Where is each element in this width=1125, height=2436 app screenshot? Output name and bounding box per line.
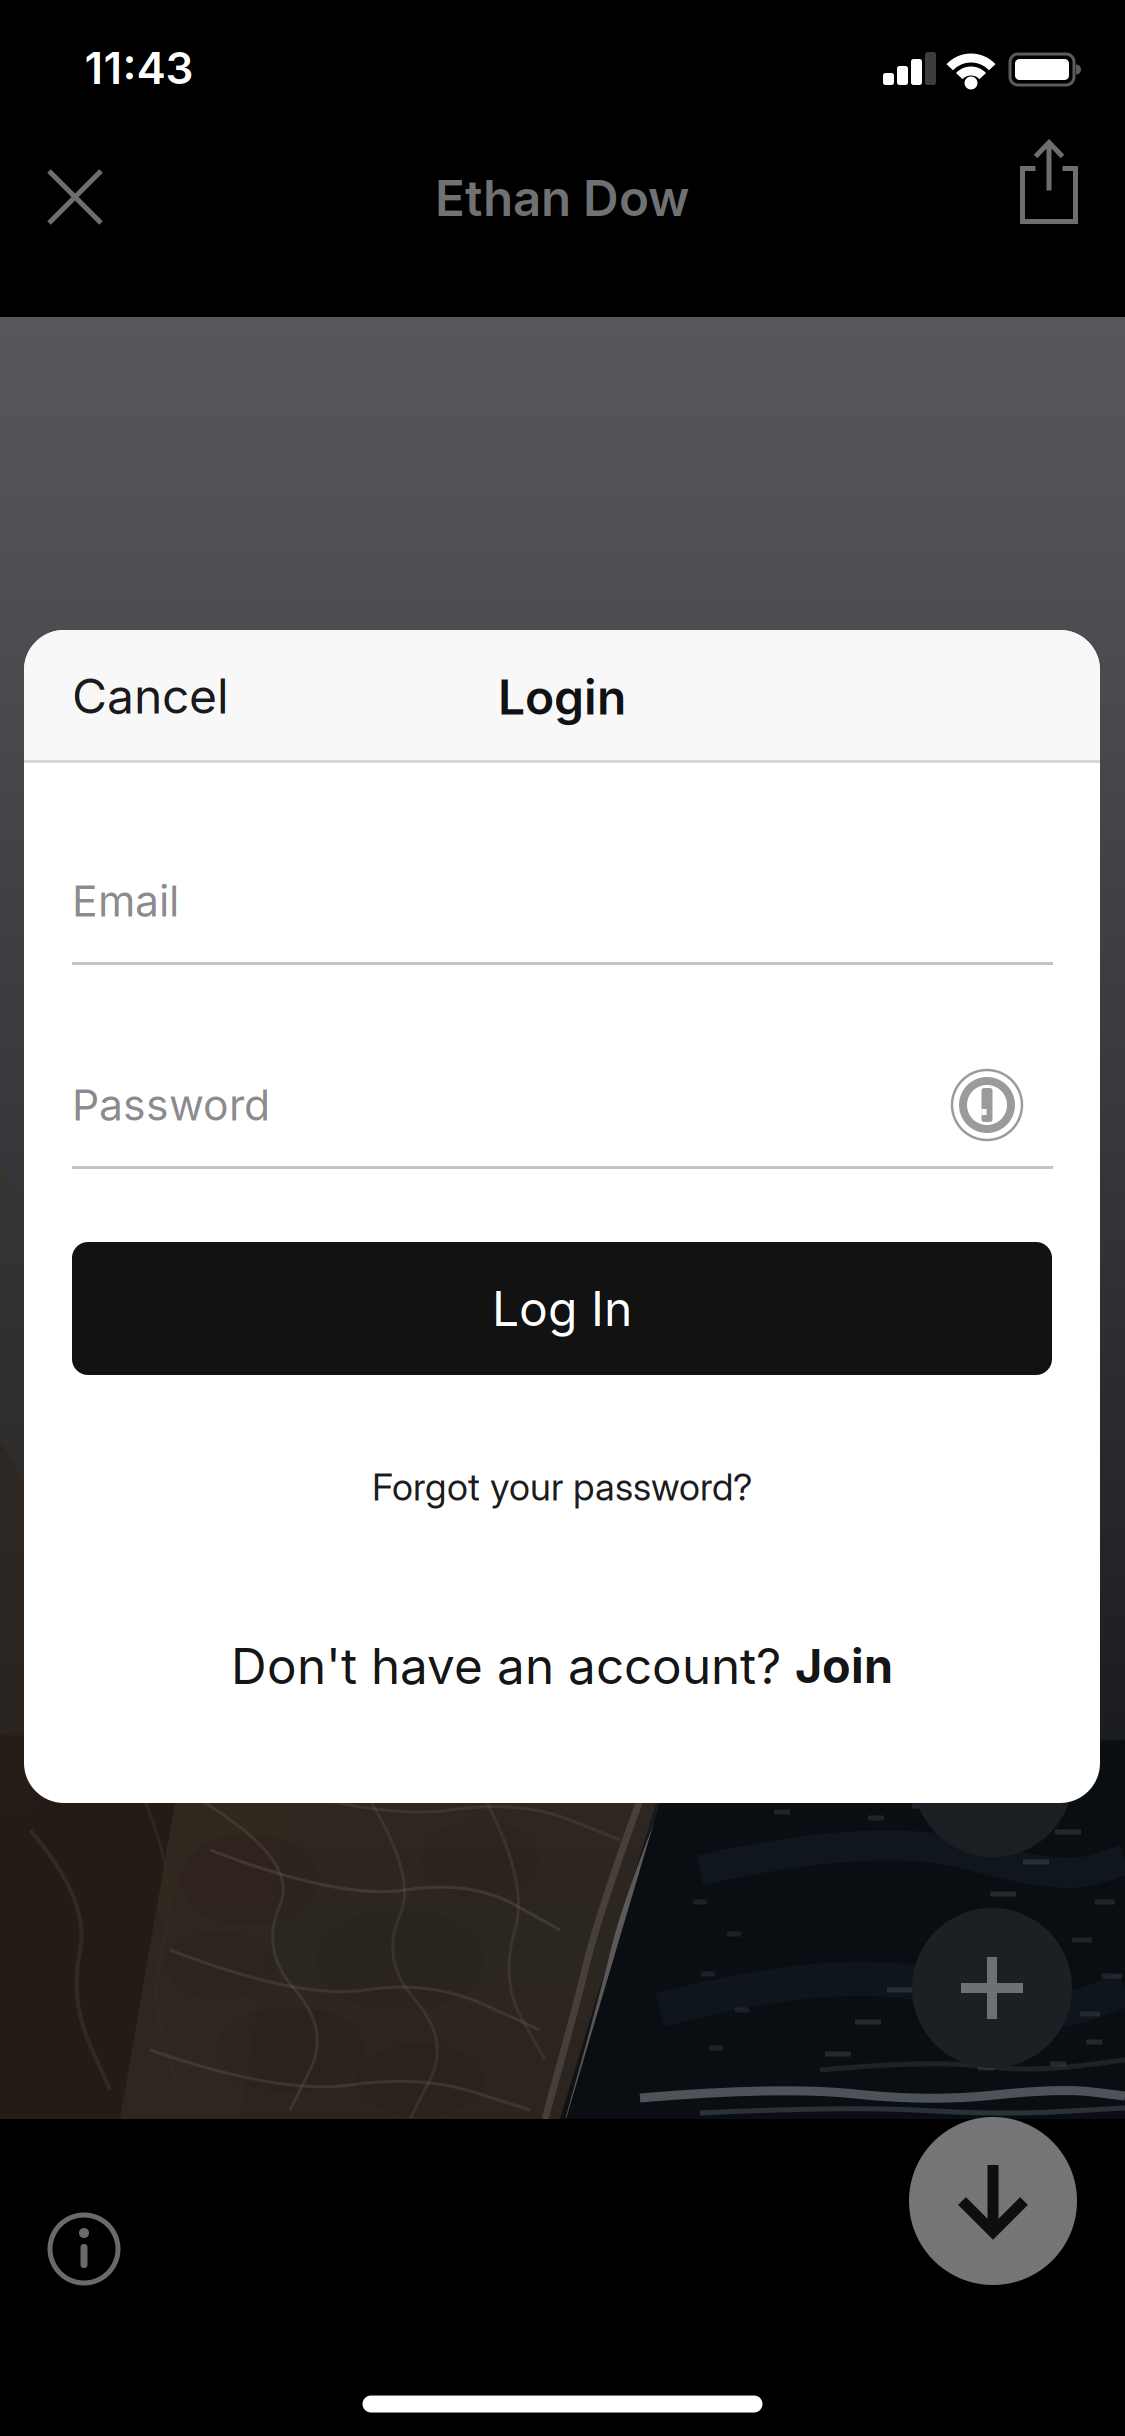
staticText: Forgot your password? xyxy=(372,1465,752,1509)
staticText: Don't have an account? xyxy=(231,1637,781,1695)
button[interactable]: Cancel xyxy=(72,641,332,751)
button[interactable] xyxy=(909,2117,1077,2285)
staticText: Login xyxy=(498,669,626,725)
staticText: Log In xyxy=(492,1280,632,1337)
staticText: 11:43 xyxy=(84,42,193,94)
button[interactable] xyxy=(39,2204,129,2294)
button[interactable]: Forgot your password? xyxy=(212,1442,912,1532)
staticText: Password xyxy=(72,1080,270,1130)
staticText: Ethan Dow xyxy=(435,169,689,227)
button[interactable] xyxy=(998,136,1099,237)
button[interactable]: Don't have an account? xyxy=(231,1611,893,1721)
staticText: Cancel xyxy=(72,668,229,724)
staticText: Join xyxy=(795,1638,893,1694)
button[interactable]: Email xyxy=(72,851,1053,951)
staticText: Email xyxy=(72,876,179,926)
button[interactable] xyxy=(29,151,121,243)
button[interactable] xyxy=(912,1908,1072,2068)
button[interactable] xyxy=(951,1069,1023,1141)
button[interactable]: Password xyxy=(72,1055,1053,1155)
button[interactable]: Log In xyxy=(72,1242,1052,1375)
